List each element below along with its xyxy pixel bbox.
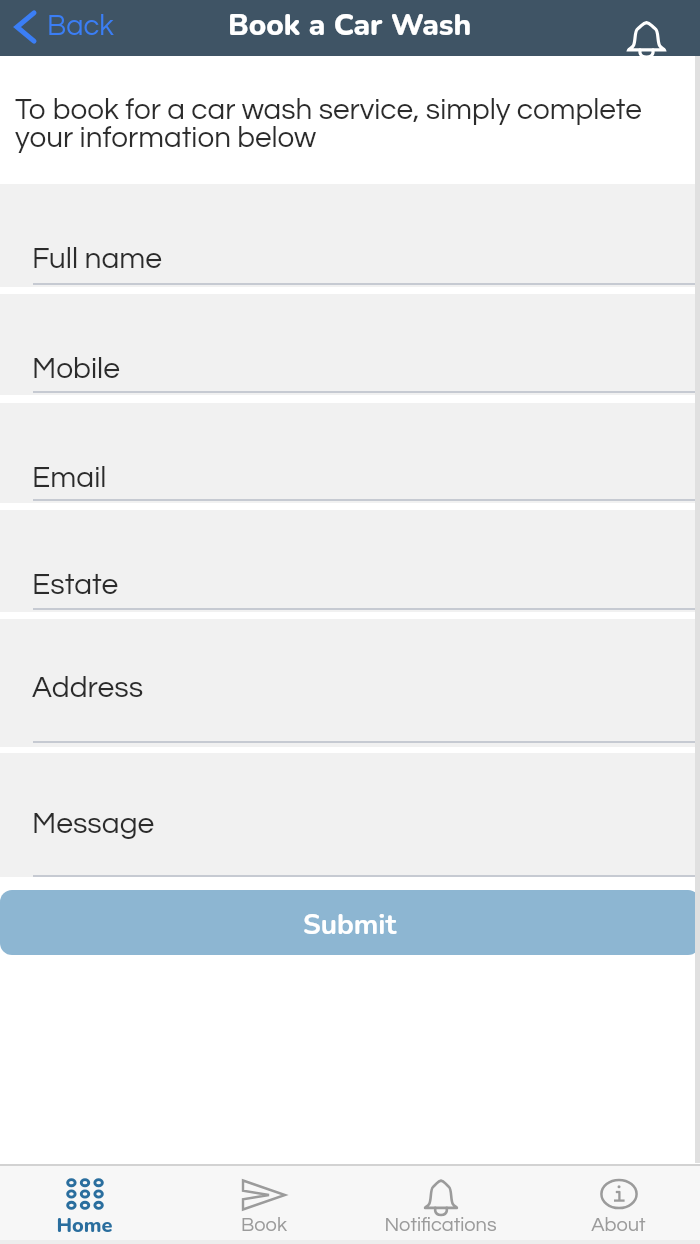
staticText: Email [32, 462, 107, 493]
button[interactable]: Home [0, 1166, 172, 1240]
staticText: Book [241, 1215, 287, 1236]
button[interactable]: Mobile [0, 294, 700, 395]
staticText: Notifications [384, 1215, 497, 1236]
staticText: Home [56, 1212, 113, 1238]
staticText: Address [32, 672, 144, 703]
button[interactable]: Submit [0, 890, 700, 955]
button[interactable]: Notifications [622, 4, 670, 52]
button[interactable]: Full name [0, 184, 700, 287]
button[interactable]: Email [0, 403, 700, 503]
staticText: To book for a car wash service, simply c… [15, 95, 654, 154]
button[interactable]: Back [15, 13, 114, 43]
button[interactable]: Message [0, 753, 700, 877]
button[interactable]: Address [0, 619, 700, 747]
staticText: Back [47, 11, 114, 41]
button[interactable]: Notifications [353, 1169, 528, 1238]
button[interactable]: Book [176, 1169, 351, 1238]
staticText: Book a Car Wash [228, 5, 472, 46]
button[interactable]: Estate [0, 510, 700, 612]
staticText: Estate [32, 569, 119, 600]
button[interactable]: About [531, 1169, 700, 1238]
staticText: Full name [32, 243, 163, 274]
staticText: Message [32, 808, 155, 839]
staticText: Submit [303, 906, 397, 944]
staticText: Mobile [32, 353, 120, 384]
staticText: About [591, 1215, 646, 1236]
